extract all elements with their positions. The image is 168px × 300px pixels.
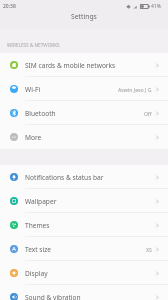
button[interactable]: Themes: [0, 213, 168, 237]
button[interactable]: SIM cards & mobile networks: [0, 53, 168, 77]
staticText: Sound & vibration: [25, 293, 81, 300]
button[interactable]: Text size: [0, 237, 168, 261]
button[interactable]: More: [0, 125, 168, 149]
staticText: Settings: [71, 12, 97, 21]
staticText: SIM cards & mobile networks: [25, 61, 116, 70]
staticText: WIRELESS & NETWORKS: [7, 42, 60, 48]
staticText: Text size: [25, 245, 52, 254]
staticText: XS: [146, 246, 152, 253]
staticText: More: [25, 133, 42, 142]
button[interactable]: Sound & vibration: [0, 285, 168, 300]
staticText: Bluetooth: [25, 109, 56, 118]
staticText: Wallpaper: [25, 197, 57, 206]
staticText: Notifications & status bar: [25, 173, 104, 182]
staticText: Wi-Fi: [25, 85, 41, 94]
staticText: 20:38: [3, 3, 16, 10]
staticText: Off: [144, 110, 152, 117]
button[interactable]: Wallpaper: [0, 189, 168, 213]
staticText: Themes: [25, 221, 50, 230]
staticText: 41%: [151, 3, 161, 10]
button[interactable]: Notifications & status bar: [0, 165, 168, 189]
button[interactable]: Display: [0, 261, 168, 285]
button[interactable]: Bluetooth: [0, 101, 168, 125]
button[interactable]: Wi-Fi: [0, 77, 168, 101]
staticText: Display: [25, 269, 48, 278]
staticText: Aswin Jeso J G: [118, 86, 152, 93]
